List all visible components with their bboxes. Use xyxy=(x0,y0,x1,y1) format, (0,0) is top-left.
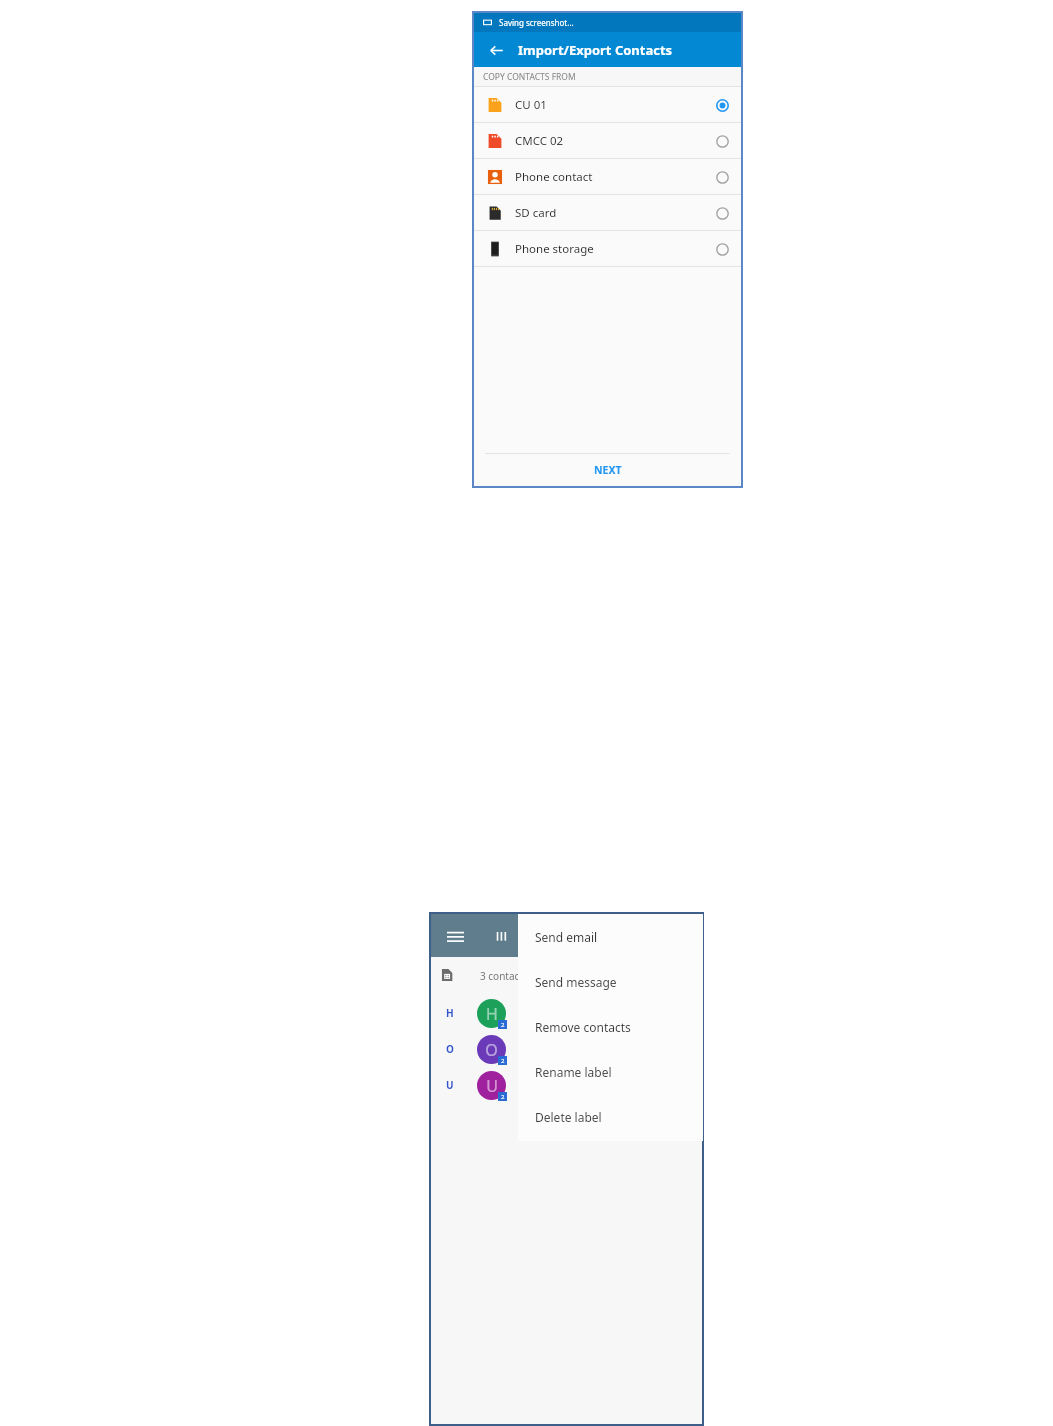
staticText: CU 01 xyxy=(515,97,547,113)
staticText: Saving screenshot... xyxy=(499,17,574,28)
staticText: 2 xyxy=(501,1093,505,1101)
staticText: SD card xyxy=(515,205,557,221)
button[interactable]: CU 01 xyxy=(474,87,741,123)
button[interactable]: Rename label xyxy=(518,1049,703,1094)
staticText: O xyxy=(485,1039,498,1061)
button[interactable]: Back xyxy=(484,38,508,62)
staticText: Delete label xyxy=(535,1109,602,1125)
staticText: Remove contacts xyxy=(535,1019,631,1035)
button[interactable]: Send message xyxy=(518,959,703,1004)
staticText: Phone contact xyxy=(515,169,593,185)
staticText: COPY CONTACTS FROM xyxy=(483,71,576,83)
staticText: Import/Export Contacts xyxy=(518,41,673,59)
button[interactable]: Open navigation drawer xyxy=(442,923,468,949)
staticText: NEXT xyxy=(594,463,622,477)
button[interactable]: Delete label xyxy=(518,1094,703,1139)
staticText: H xyxy=(446,1006,454,1020)
staticText: 2 xyxy=(501,1021,505,1029)
staticText: 2 xyxy=(501,1057,505,1065)
staticText: CMCC 02 xyxy=(515,133,564,149)
button[interactable]: NEXT xyxy=(474,454,741,486)
staticText: H xyxy=(486,1003,498,1025)
button[interactable]: O xyxy=(431,1031,702,1067)
staticText: U xyxy=(446,1078,454,1092)
button[interactable]: CMCC 02 xyxy=(474,123,741,159)
staticText: 3 contacts xyxy=(480,969,528,983)
button[interactable]: H xyxy=(431,995,702,1031)
button[interactable]: Filter xyxy=(488,923,514,949)
staticText: Rename label xyxy=(535,1064,612,1080)
staticText: Send message xyxy=(535,974,617,990)
staticText: Send email xyxy=(535,929,598,945)
button[interactable]: Phone storage xyxy=(474,231,741,267)
staticText: O xyxy=(446,1042,454,1056)
staticText: Phone storage xyxy=(515,241,594,257)
button[interactable]: Phone contact xyxy=(474,159,741,195)
staticText: U xyxy=(486,1075,498,1097)
button[interactable]: Remove contacts xyxy=(518,1004,703,1049)
button[interactable]: Send email xyxy=(518,914,703,959)
button[interactable]: SD card xyxy=(474,195,741,231)
button[interactable]: U xyxy=(431,1067,702,1103)
